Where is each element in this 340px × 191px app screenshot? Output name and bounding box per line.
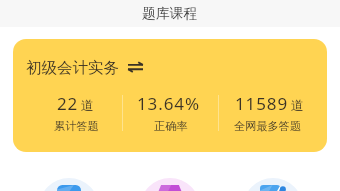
staticText: 累计答题 [54, 119, 99, 133]
staticText: 11589 [235, 92, 289, 115]
staticText: 道 [291, 97, 304, 113]
button[interactable]: 初级会计实务 [13, 39, 327, 152]
staticText: 22 [57, 92, 79, 115]
staticText: 全网最多答题 [234, 119, 302, 133]
staticText: 初级会计实务 [26, 58, 119, 78]
button[interactable]: Question bank [39, 178, 99, 191]
staticText: 题库课程 [142, 5, 198, 22]
staticText: 正确率 [154, 119, 188, 133]
button[interactable]: Notes [243, 178, 303, 191]
staticText: 道 [81, 97, 94, 113]
staticText: 13.64% [137, 92, 200, 115]
button[interactable]: Mock exam [140, 178, 200, 191]
